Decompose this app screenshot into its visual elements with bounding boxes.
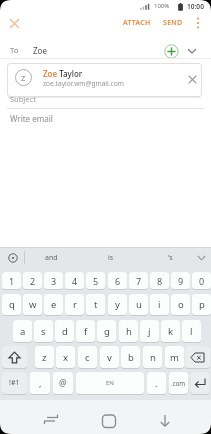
staticText: d (62, 325, 68, 338)
button[interactable]: x (56, 346, 75, 369)
staticText: h (126, 325, 132, 338)
button[interactable]: 2 (23, 272, 42, 290)
staticText: zoe.taylor.wm@gmail.com (43, 79, 124, 88)
button[interactable]: 0 (192, 272, 211, 290)
button[interactable]: !#1 (2, 372, 27, 395)
button[interactable]: .com (169, 372, 188, 395)
staticText: SEND (163, 18, 183, 28)
staticText: 8 (157, 275, 163, 287)
staticText: g (104, 325, 110, 338)
staticText: n (150, 351, 156, 364)
staticText: p (199, 298, 205, 311)
staticText: a (20, 325, 26, 338)
staticText: Z (21, 73, 26, 83)
button[interactable]: j (140, 320, 159, 343)
button[interactable]: h (119, 320, 138, 343)
staticText: 5 (93, 275, 99, 287)
button[interactable]: p (192, 294, 211, 316)
button[interactable]: and (31, 249, 71, 266)
staticText: is (108, 253, 114, 263)
button[interactable]: 7 (129, 272, 148, 290)
button[interactable]: i (150, 294, 169, 316)
button[interactable] (164, 44, 179, 59)
button[interactable]: is (91, 249, 131, 266)
staticText: 9 (178, 275, 184, 287)
staticText: l (190, 325, 193, 338)
button[interactable]: v (100, 346, 119, 369)
staticText: s (41, 325, 46, 338)
staticText: x (63, 351, 69, 364)
staticText: t (94, 298, 98, 311)
staticText: q (9, 298, 15, 311)
button[interactable]: 8 (150, 272, 169, 290)
button[interactable]: q (2, 294, 21, 316)
button[interactable]: e (44, 294, 63, 316)
button[interactable] (192, 14, 204, 32)
button[interactable]: g (97, 320, 116, 343)
staticText: i (158, 298, 161, 311)
button[interactable]: EN (76, 372, 144, 395)
button[interactable]: Z (7, 63, 202, 97)
staticText: r (73, 298, 77, 311)
button[interactable]: 3 (44, 272, 63, 290)
button[interactable]: t (86, 294, 105, 316)
button[interactable]: n (143, 346, 162, 369)
staticText: 0 (199, 275, 205, 287)
staticText: 's (168, 253, 173, 263)
button[interactable]: m (165, 346, 184, 369)
staticText: EN (106, 379, 114, 387)
button[interactable]: SEND (156, 15, 190, 31)
staticText: Zoe (33, 45, 47, 56)
staticText: , (39, 377, 42, 389)
button[interactable]: 9 (171, 272, 190, 290)
button[interactable]: r (65, 294, 84, 316)
staticText: ATTACH (123, 18, 151, 28)
staticText: 1 (9, 275, 15, 287)
button[interactable]: 1 (2, 272, 21, 290)
button[interactable] (155, 410, 177, 432)
button[interactable]: w (23, 294, 42, 316)
button[interactable]: . (147, 372, 166, 395)
staticText: c (85, 351, 90, 364)
staticText: v (107, 351, 112, 364)
button[interactable] (185, 44, 199, 58)
staticText: Subject (10, 94, 36, 104)
staticText: 2 (30, 275, 36, 287)
button[interactable]: 's (150, 249, 190, 266)
staticText: f (84, 325, 88, 338)
button[interactable]: 5 (86, 272, 105, 290)
button[interactable]: o (171, 294, 190, 316)
staticText: To (10, 45, 19, 55)
staticText: @ (59, 377, 67, 389)
staticText: 100% (154, 2, 170, 10)
button[interactable]: d (55, 320, 74, 343)
button[interactable] (191, 372, 209, 395)
button[interactable]: y (108, 294, 127, 316)
button[interactable]: u (129, 294, 148, 316)
staticText: and (45, 253, 58, 263)
button[interactable]: ATTACH (116, 15, 158, 31)
staticText: e (51, 298, 57, 311)
button[interactable]: 6 (108, 272, 127, 290)
button[interactable] (98, 410, 120, 432)
staticText: u (136, 298, 142, 311)
button[interactable]: f (76, 320, 95, 343)
button[interactable]: l (182, 320, 201, 343)
button[interactable]: @ (53, 372, 73, 395)
button[interactable]: k (161, 320, 180, 343)
button[interactable] (185, 346, 210, 369)
button[interactable] (2, 346, 27, 369)
button[interactable]: z (35, 346, 54, 369)
button[interactable]: b (121, 346, 140, 369)
button[interactable]: a (13, 320, 32, 343)
button[interactable]: , (30, 372, 50, 395)
staticText: k (168, 325, 174, 338)
button[interactable]: s (34, 320, 53, 343)
staticText: 4 (72, 275, 78, 287)
button[interactable] (6, 15, 23, 32)
button[interactable] (40, 410, 62, 430)
button[interactable]: c (78, 346, 97, 369)
staticText: Zoe Taylor (43, 68, 83, 79)
button[interactable]: 4 (65, 272, 84, 290)
staticText: m (170, 351, 179, 364)
